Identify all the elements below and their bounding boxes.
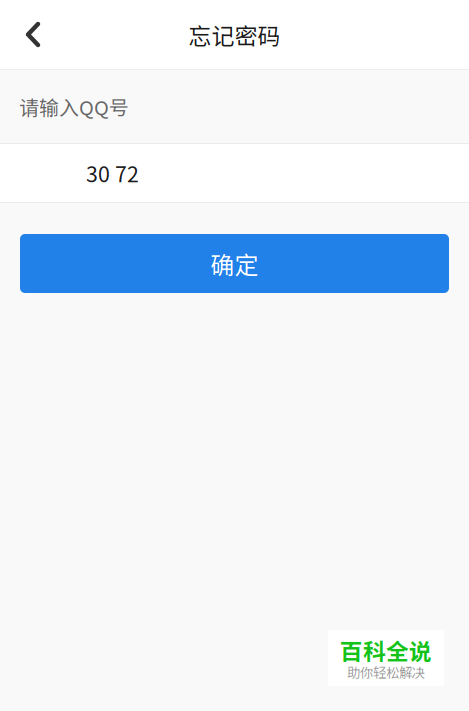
staticText: 助你轻松解决 xyxy=(347,662,425,682)
staticText: 忘记密码 xyxy=(188,18,280,51)
staticText: 30 72 xyxy=(86,158,139,188)
staticText: 请输入QQ号 xyxy=(19,92,129,121)
button[interactable]: 返回 xyxy=(9,10,57,58)
staticText: 确定 xyxy=(210,246,258,281)
button[interactable]: 30 72 xyxy=(0,144,469,202)
staticText: 百科全说 xyxy=(340,634,432,666)
button[interactable]: 确定 xyxy=(20,234,449,293)
